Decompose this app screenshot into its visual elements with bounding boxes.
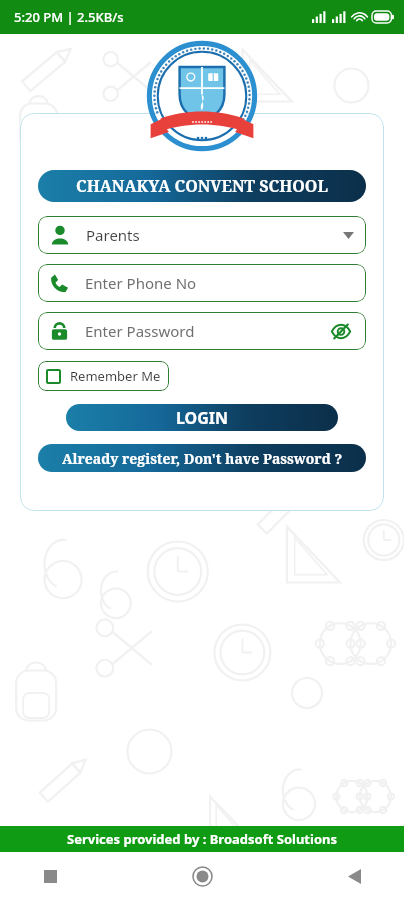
staticText: Already register, Don't have Password ? bbox=[62, 449, 343, 468]
staticText: LOGIN bbox=[176, 407, 229, 429]
button[interactable]: Enter Phone No bbox=[38, 264, 366, 302]
button[interactable]: Recent apps bbox=[26, 852, 74, 900]
button[interactable]: Show password bbox=[328, 318, 354, 344]
staticText: Enter Password bbox=[85, 321, 195, 341]
button[interactable]: Enter Password bbox=[38, 312, 366, 350]
button[interactable]: CHANAKYA CONVENT SCHOOL bbox=[38, 170, 366, 202]
button[interactable]: Home bbox=[178, 852, 226, 900]
button[interactable]: Parents bbox=[38, 216, 366, 254]
staticText: Services provided by : Broadsoft Solutio… bbox=[67, 830, 337, 848]
staticText: Remember Me bbox=[70, 367, 161, 385]
button[interactable]: LOGIN bbox=[66, 404, 338, 431]
button[interactable]: Already register, Don't have Password ? bbox=[38, 444, 366, 472]
button[interactable]: Back bbox=[330, 852, 378, 900]
button[interactable]: Remember Me bbox=[38, 361, 169, 391]
staticText: Enter Phone No bbox=[85, 273, 197, 293]
staticText: Parents bbox=[86, 225, 140, 245]
staticText: 5:20 PM | 2.5KB/s bbox=[14, 8, 124, 26]
staticText: CHANAKYA CONVENT SCHOOL bbox=[76, 175, 328, 197]
